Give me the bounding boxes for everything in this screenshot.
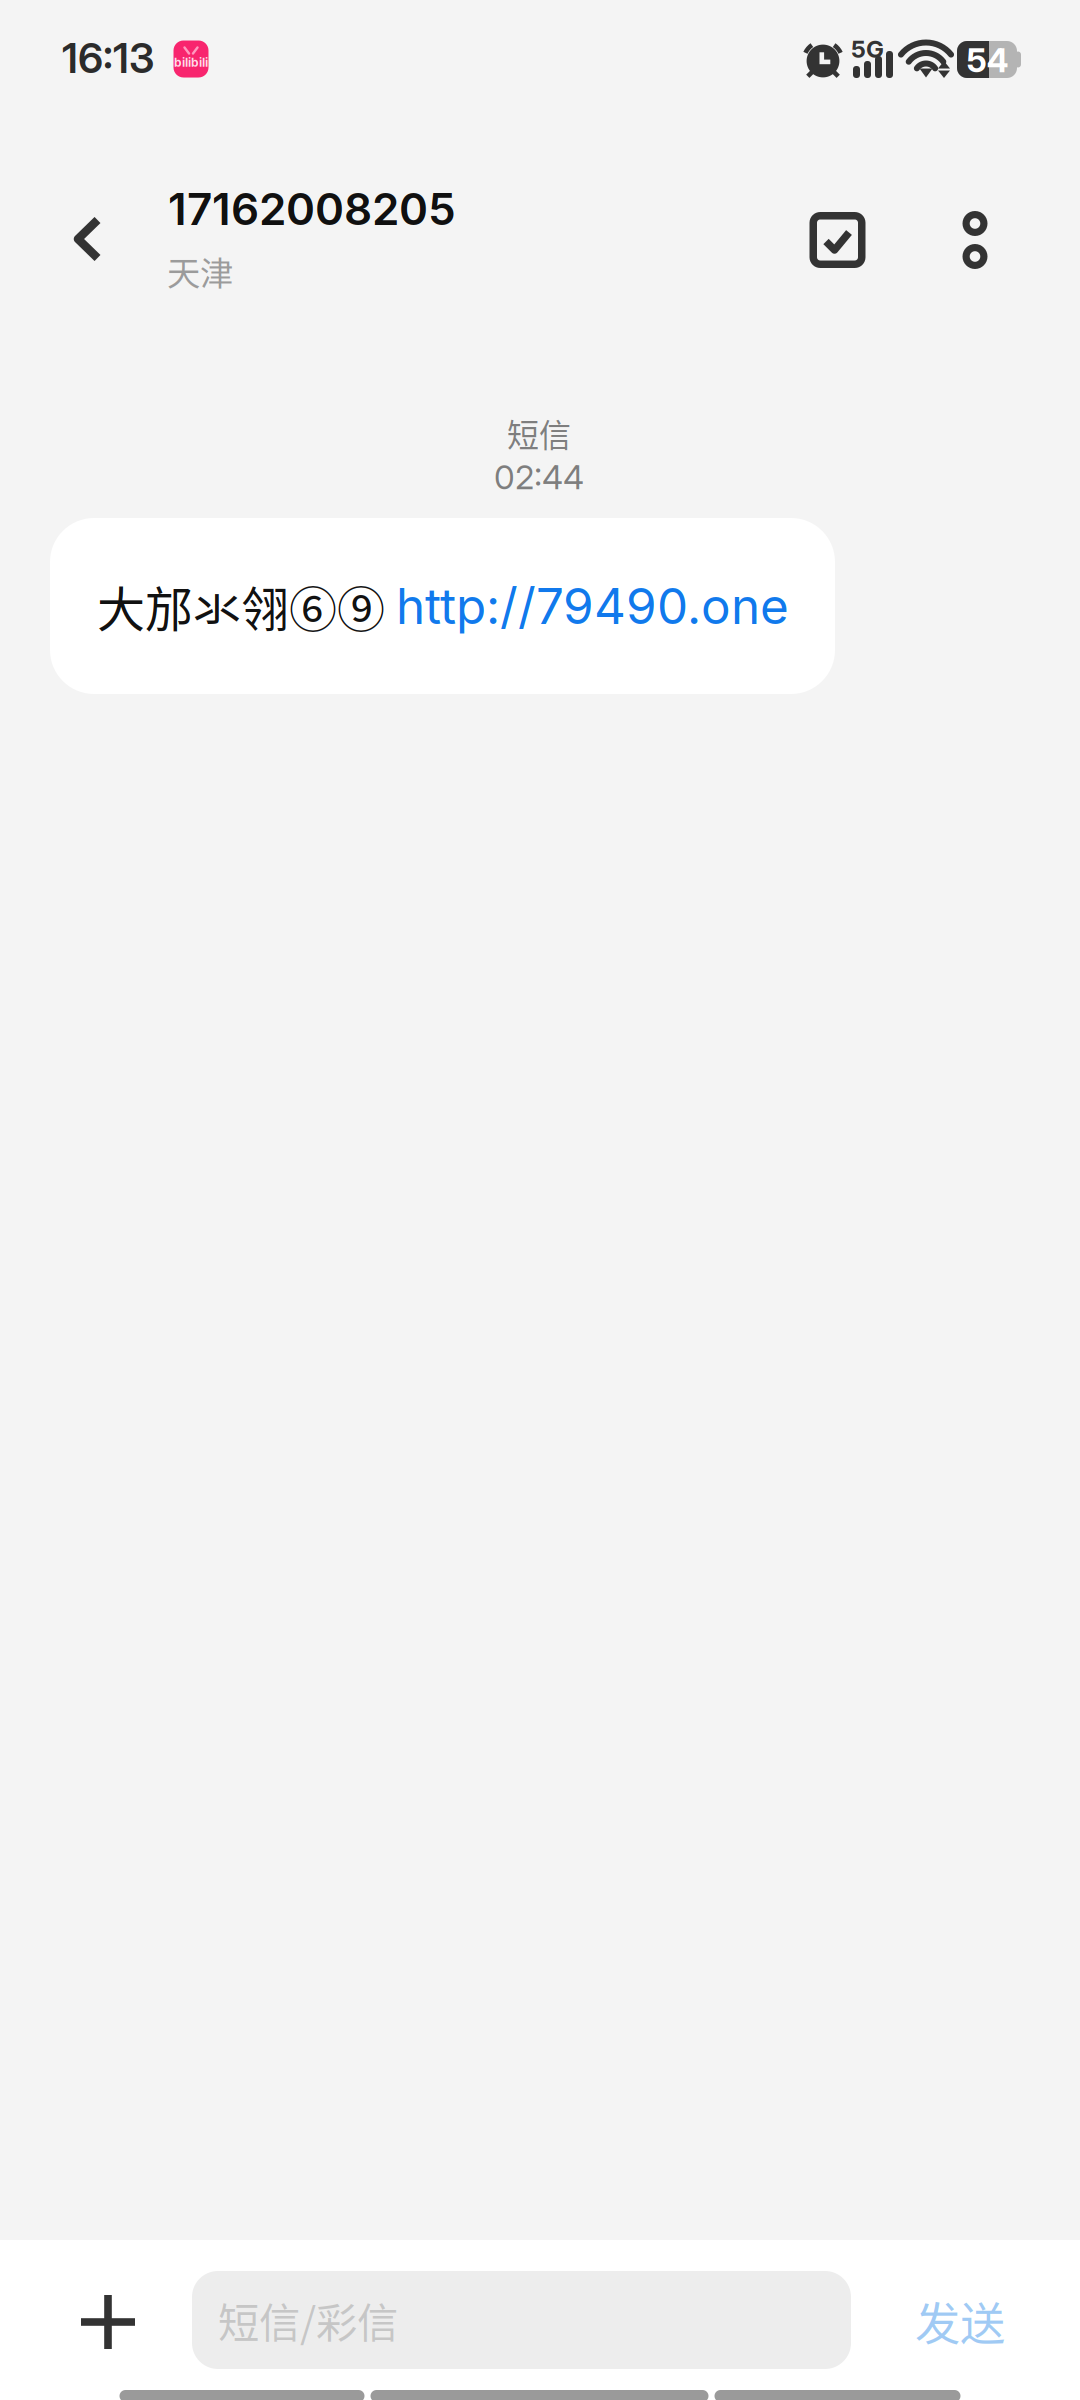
- staticText: http://79490.one: [396, 576, 789, 636]
- staticText: 短信/彩信: [218, 2290, 398, 2350]
- button[interactable]: 发送: [865, 2261, 1055, 2381]
- staticText: 54: [966, 40, 1008, 80]
- button[interactable]: 大邡氺翎⑥⑨: [50, 518, 835, 694]
- button[interactable]: 短信/彩信: [192, 2271, 851, 2369]
- button[interactable]: More options: [920, 175, 1030, 305]
- staticText: 大邡氺翎⑥⑨: [97, 571, 396, 641]
- staticText: bilibili: [174, 55, 208, 70]
- staticText: 16:13: [62, 33, 154, 83]
- staticText: 天津: [167, 247, 233, 295]
- button[interactable]: Select messages: [777, 175, 897, 305]
- staticText: 02:44: [494, 457, 584, 497]
- button[interactable]: Back: [28, 174, 148, 304]
- staticText: 短信: [507, 410, 571, 456]
- staticText: 17162008205: [168, 182, 456, 236]
- button[interactable]: Add attachment: [38, 2257, 178, 2387]
- staticText: 5G: [851, 34, 884, 63]
- staticText: 发送: [915, 2288, 1005, 2354]
